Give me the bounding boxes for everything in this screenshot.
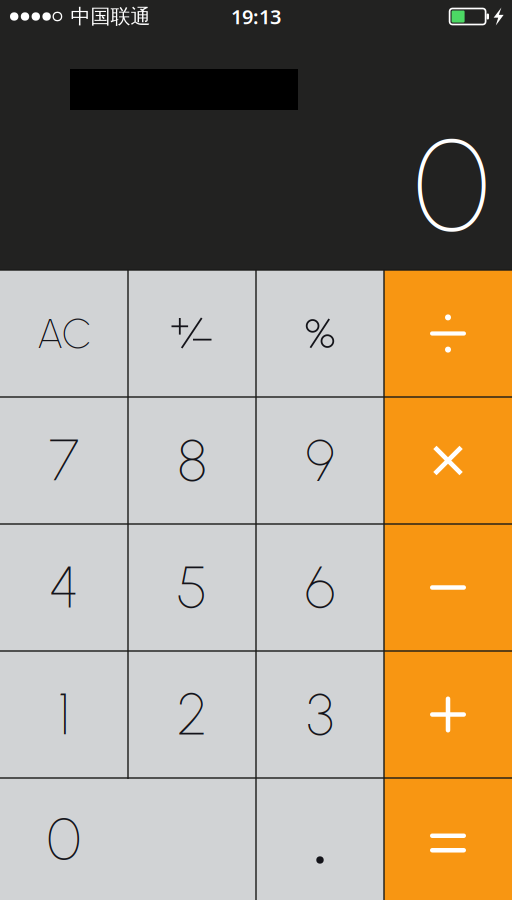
staticText: AC xyxy=(37,309,91,358)
button[interactable]: 4 xyxy=(0,524,128,651)
button[interactable]: 5 xyxy=(128,524,256,651)
staticText: 7 xyxy=(49,426,79,495)
staticText: 9 xyxy=(305,426,334,495)
button[interactable]: 0 xyxy=(0,778,256,900)
button[interactable]: 2 xyxy=(128,651,256,778)
button[interactable]: 1 xyxy=(0,651,128,778)
staticText: 8 xyxy=(177,426,206,495)
button[interactable]: Plus xyxy=(384,651,512,778)
button[interactable]: Minus xyxy=(384,524,512,651)
staticText: 中国联通 xyxy=(71,4,151,29)
button[interactable]: Decimal point xyxy=(256,778,384,900)
button[interactable]: Equals xyxy=(384,778,512,900)
button[interactable]: 9 xyxy=(256,397,384,524)
staticText: 1 xyxy=(58,680,70,749)
button[interactable]: Multiply xyxy=(384,397,512,524)
button[interactable]: Divide xyxy=(384,270,512,397)
button[interactable]: 3 xyxy=(256,651,384,778)
staticText: 0 xyxy=(47,805,81,873)
button[interactable]: AC xyxy=(0,270,128,397)
staticText: 0 xyxy=(414,108,489,262)
staticText: 2 xyxy=(177,680,207,749)
staticText: 3 xyxy=(306,680,333,749)
staticText: 19:13 xyxy=(231,3,281,30)
button[interactable]: Plus minus xyxy=(128,270,256,397)
button[interactable]: 6 xyxy=(256,524,384,651)
staticText: 6 xyxy=(305,553,335,622)
button[interactable]: 8 xyxy=(128,397,256,524)
staticText: 4 xyxy=(49,553,79,622)
button[interactable]: 7 xyxy=(0,397,128,524)
staticText: 5 xyxy=(176,553,207,622)
button[interactable]: Percent xyxy=(256,270,384,397)
